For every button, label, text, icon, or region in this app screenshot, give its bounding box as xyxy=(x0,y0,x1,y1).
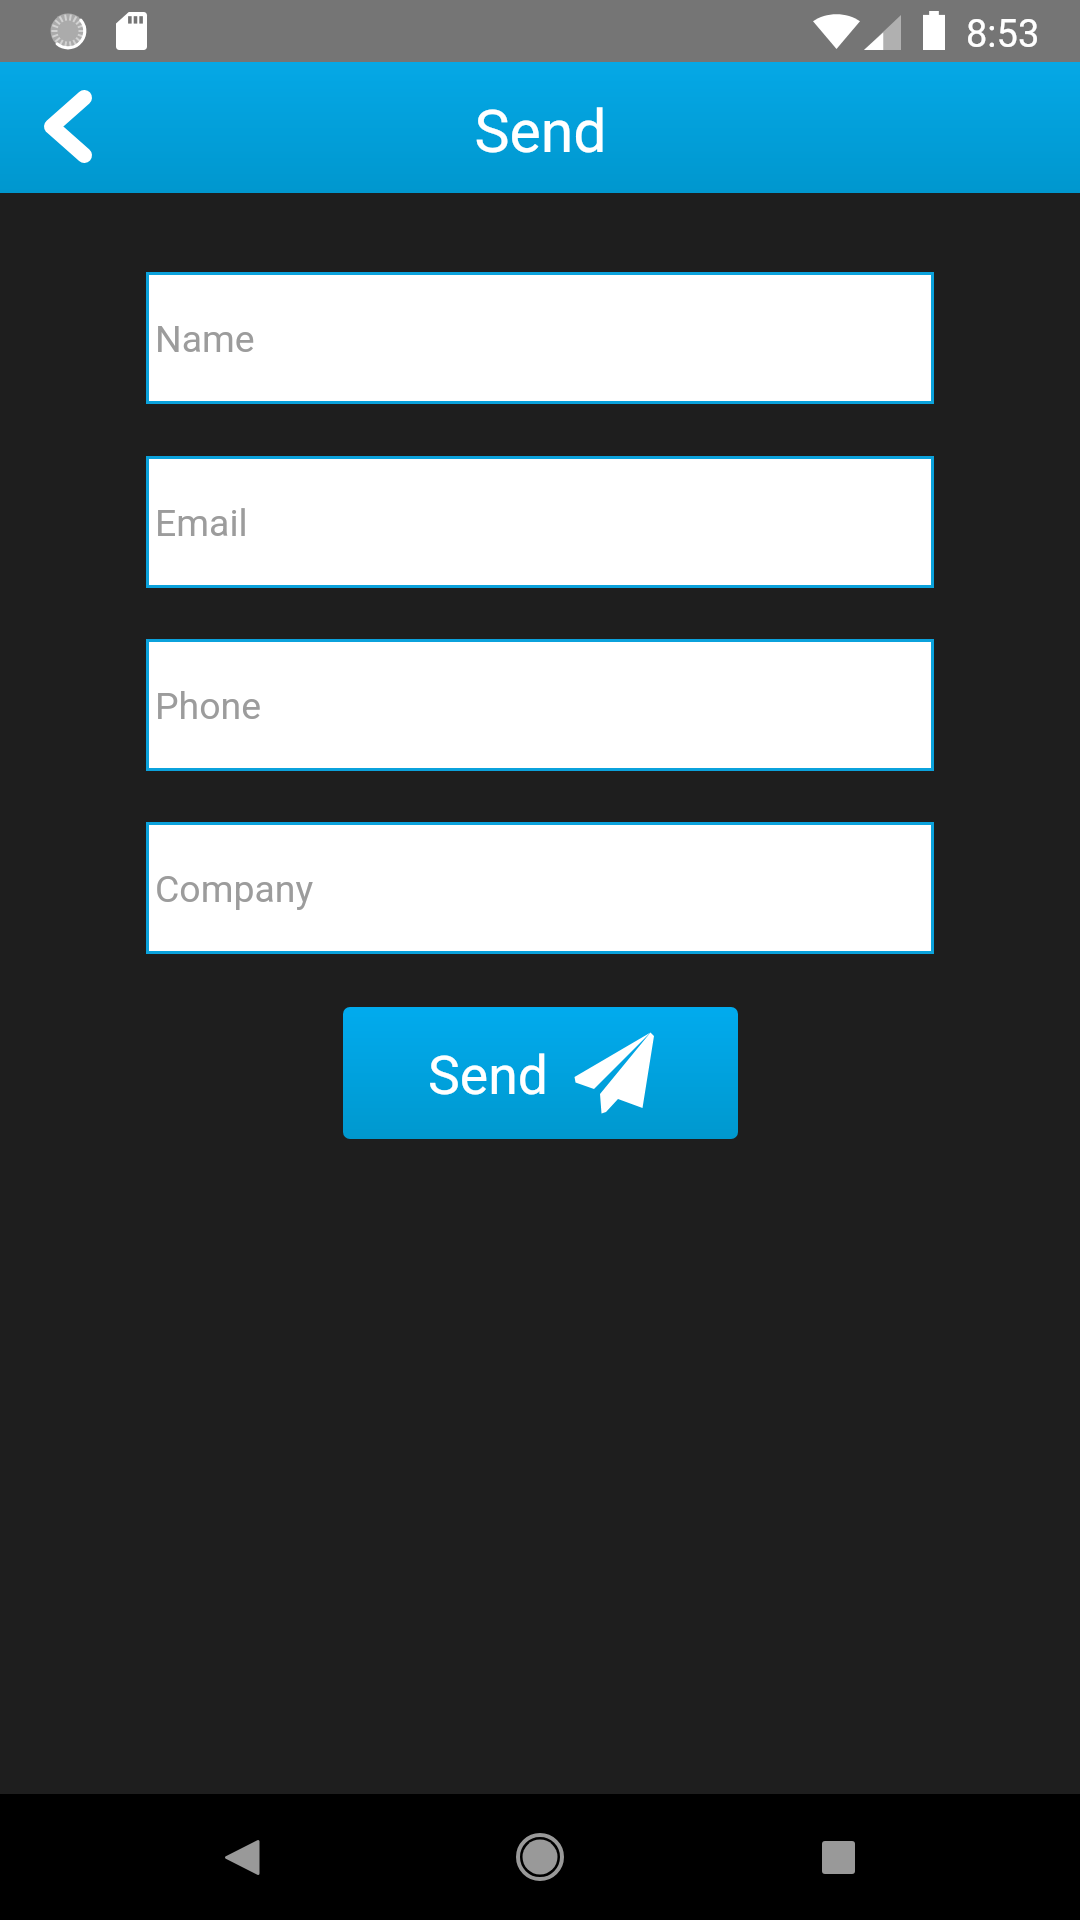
staticText: Phone xyxy=(155,684,261,728)
button[interactable]: Recents xyxy=(778,1794,898,1920)
button[interactable]: Back xyxy=(181,1794,301,1920)
staticText: Email xyxy=(155,501,248,545)
button[interactable]: Company xyxy=(149,825,931,951)
button[interactable]: Name xyxy=(149,275,931,401)
staticText: Send xyxy=(428,1044,548,1107)
staticText: 8:53 xyxy=(966,12,1040,57)
staticText: Company xyxy=(155,867,314,911)
staticText: Name xyxy=(155,317,255,361)
button[interactable]: Email xyxy=(149,459,931,585)
button[interactable]: Send xyxy=(343,1007,738,1139)
button[interactable]: Home xyxy=(480,1794,600,1920)
button[interactable]: Phone xyxy=(149,642,931,768)
button[interactable]: Back xyxy=(12,62,124,193)
staticText: Send xyxy=(474,97,607,166)
